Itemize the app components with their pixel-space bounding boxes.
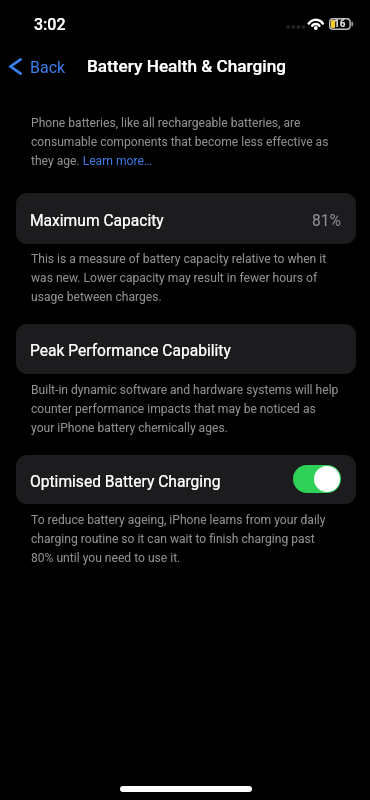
staticText: Built-in dynamic software and hardware s…: [31, 379, 340, 436]
staticText: 3:02: [34, 15, 66, 34]
button[interactable]: Back: [3, 52, 76, 83]
button[interactable]: Peak Performance Capability: [16, 324, 356, 374]
staticText: 81%: [312, 212, 341, 230]
staticText: Maximum Capacity: [30, 212, 164, 230]
button[interactable]: Optimised Battery Charging: [16, 455, 356, 504]
button[interactable]: Maximum Capacity: [16, 193, 356, 244]
button[interactable]: Optimised Battery Charging, on: [293, 465, 341, 493]
staticText: Peak Performance Capability: [30, 342, 231, 360]
staticText: Phone batteries, like all rechargeable b…: [31, 112, 340, 169]
staticText: Back: [30, 58, 66, 77]
staticText: To reduce battery ageing, iPhone learns …: [31, 509, 340, 566]
staticText: 16: [334, 18, 346, 30]
staticText: Battery Health & Charging: [87, 56, 286, 76]
button[interactable]: Learn more about battery health: [83, 152, 152, 168]
staticText: Optimised Battery Charging: [30, 473, 221, 491]
staticText: This is a measure of battery capacity re…: [31, 248, 340, 305]
